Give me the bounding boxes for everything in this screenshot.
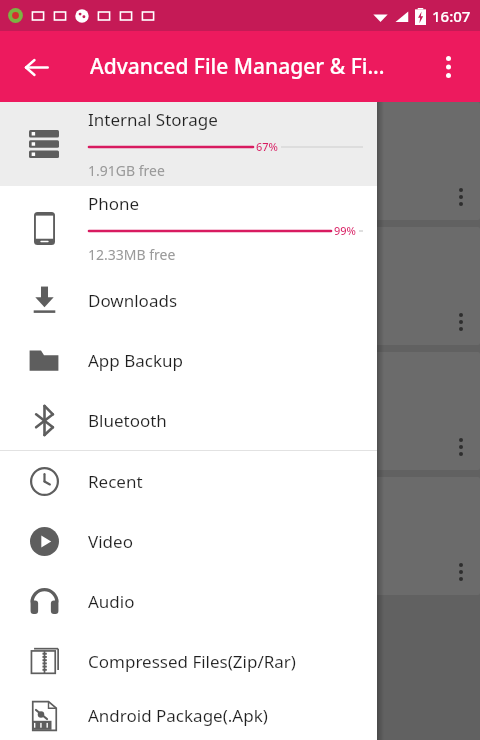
staticText: Compressed Files(Zip/Rar) (88, 650, 296, 673)
staticText: Android Package(.Apk) (88, 704, 268, 727)
button[interactable]: Recent (0, 451, 377, 511)
staticText: Phone (88, 192, 140, 215)
button[interactable]: Internal Storage (0, 102, 377, 186)
staticText: com.gametin.flash (115, 150, 264, 173)
staticText: Internal Storage (88, 108, 218, 131)
button[interactable]: Compressed Files(Zip/Rar) (0, 631, 377, 691)
staticText: com.gametin.flash (115, 275, 264, 298)
staticText: com.gametin.flash (115, 525, 264, 548)
staticText: App Backup (88, 349, 183, 372)
button[interactable]: Downloads (0, 270, 377, 330)
button[interactable]: Video (0, 511, 377, 571)
button[interactable]: Back (12, 43, 60, 91)
staticText: 99% (334, 223, 356, 238)
staticText: 16:07 (432, 6, 471, 26)
staticText: 67% (256, 139, 278, 154)
staticText: Recent (88, 470, 143, 493)
button[interactable]: Bluetooth (0, 390, 377, 450)
staticText: 12.33MB free (88, 245, 176, 264)
button[interactable]: More options (424, 43, 472, 91)
button[interactable]: Audio (0, 571, 377, 631)
button[interactable]: Phone (0, 186, 377, 270)
staticText: 1.91GB free (88, 161, 165, 180)
staticText: com.gametin.flash (115, 400, 264, 423)
staticText: Video (88, 530, 133, 553)
staticText: Bluetooth (88, 409, 167, 432)
staticText: Advanced File Manager & Fi... (90, 52, 385, 81)
button[interactable]: App Backup (0, 330, 377, 390)
staticText: Audio (88, 590, 135, 613)
staticText: Downloads (88, 289, 178, 312)
button[interactable]: Android Package(.Apk) (0, 691, 377, 740)
